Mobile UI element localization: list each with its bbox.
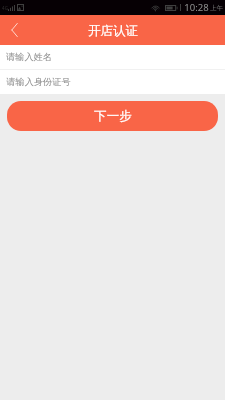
staticText: 4G	[2, 5, 8, 11]
button[interactable]: 下一步	[7, 101, 218, 131]
staticText: 10:28	[184, 1, 209, 14]
button[interactable]: 返回	[0, 15, 28, 45]
button[interactable]: 请输入姓名	[0, 45, 225, 69]
staticText: 请输入身份证号	[6, 76, 71, 88]
staticText: 请输入姓名	[6, 51, 52, 63]
button[interactable]: 请输入身份证号	[0, 70, 225, 94]
staticText: 上午	[210, 4, 223, 12]
staticText: 开店认证	[88, 23, 138, 39]
staticText: 下一步	[94, 108, 132, 124]
